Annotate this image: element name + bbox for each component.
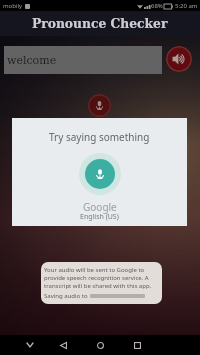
staticText: Try saying something <box>49 130 150 144</box>
staticText: Your audio will be sent to Google to pro… <box>44 266 158 290</box>
button[interactable]: Home <box>88 335 112 355</box>
staticText: mobily <box>3 2 23 10</box>
staticText: Google <box>83 200 117 214</box>
staticText: welcome <box>7 54 57 67</box>
staticText: Saving audio to <box>44 292 88 300</box>
button[interactable]: Back <box>51 335 75 355</box>
staticText: Pronounce Checker <box>32 16 168 30</box>
button[interactable]: Hide keyboard <box>18 335 42 355</box>
button[interactable]: welcome <box>4 46 162 74</box>
button[interactable]: Speak <box>166 46 192 72</box>
staticText: 68% <box>151 2 163 10</box>
staticText: 5:20 am <box>175 2 198 10</box>
button[interactable]: Microphone <box>85 159 115 189</box>
staticText: English (US) <box>80 212 119 222</box>
button[interactable]: Recent apps <box>125 335 149 355</box>
button[interactable]: Record <box>88 94 111 117</box>
